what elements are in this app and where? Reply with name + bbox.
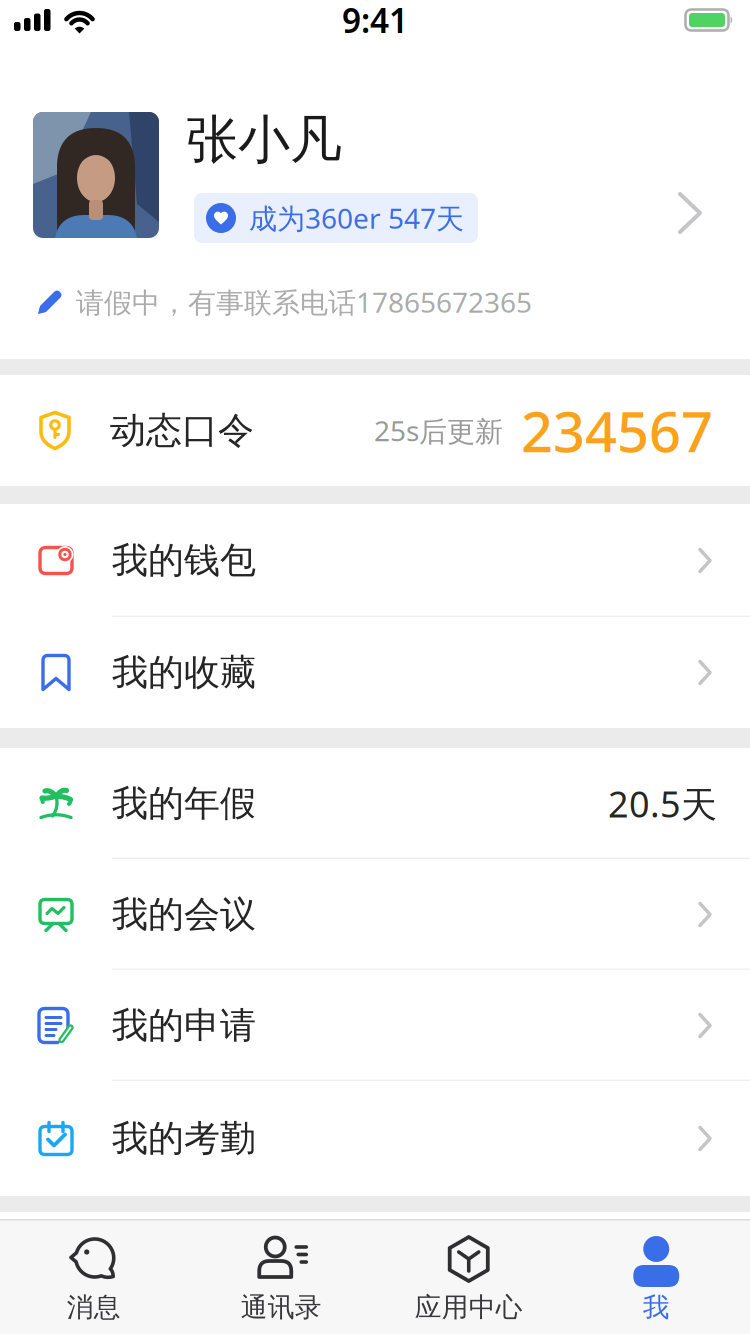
button[interactable]: 我的会议 xyxy=(0,859,750,970)
staticText: 234567 xyxy=(521,393,713,468)
staticText: 25s后更新 xyxy=(374,412,503,449)
staticText: 我的钱包 xyxy=(112,538,256,583)
button[interactable]: 我 xyxy=(562,1233,750,1324)
staticText: 通讯录 xyxy=(241,1291,322,1324)
button[interactable]: 消息 xyxy=(0,1233,187,1324)
staticText: 消息 xyxy=(67,1291,121,1324)
staticText: 我 xyxy=(643,1291,670,1324)
staticText: 请假中，有事联系电话17865672365 xyxy=(76,283,532,321)
button[interactable]: 应用中心 xyxy=(375,1233,562,1324)
button[interactable]: 我的考勤 xyxy=(0,1081,750,1196)
staticText: 应用中心 xyxy=(415,1291,523,1324)
staticText: 20.5天 xyxy=(608,780,717,827)
button[interactable]: 成为360er 547天 xyxy=(194,193,478,243)
staticText: 我的收藏 xyxy=(112,650,256,695)
staticText: 我的年假 xyxy=(112,781,256,826)
button[interactable]: 动态口令 xyxy=(0,375,750,486)
button[interactable]: 我的钱包 xyxy=(0,504,750,617)
staticText: 我的申请 xyxy=(112,1003,256,1048)
staticText: 成为360er 547天 xyxy=(249,199,464,237)
button[interactable]: 我的收藏 xyxy=(0,617,750,728)
button[interactable]: 我的申请 xyxy=(0,970,750,1081)
staticText: 张小凡 xyxy=(186,108,342,172)
staticText: 动态口令 xyxy=(110,408,254,453)
staticText: 我的会议 xyxy=(112,892,256,937)
staticText: 9:41 xyxy=(342,0,408,42)
staticText: 我的考勤 xyxy=(112,1116,256,1161)
button[interactable]: 通讯录 xyxy=(187,1233,375,1324)
button[interactable]: 请假中，有事联系电话17865672365 xyxy=(0,272,750,332)
button[interactable]: 张小凡 xyxy=(0,40,750,244)
button[interactable]: 我的年假 xyxy=(0,748,750,859)
